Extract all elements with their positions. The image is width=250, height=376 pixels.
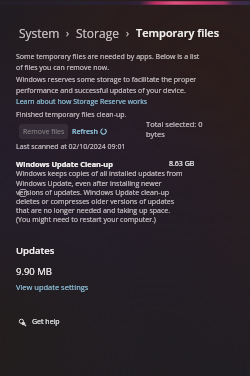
button[interactable]: Learn about how Storage Reserve works [16, 97, 148, 107]
button[interactable]: Select Windows Update Clean-up [19, 189, 27, 197]
staticText: Remove files [23, 127, 65, 137]
staticText: Windows Update Clean-up [16, 159, 113, 169]
staticText: Last scanned at 02/10/2024 09:01 [16, 142, 126, 152]
button[interactable]: System [19, 25, 60, 41]
staticText: Windows reserves some storage to facilit… [16, 75, 202, 95]
staticText: Refresh [72, 127, 98, 137]
staticText: Get help [32, 317, 60, 327]
button[interactable]: View update settings [16, 282, 89, 292]
staticText: › [126, 26, 130, 40]
button[interactable]: Storage [76, 25, 119, 41]
staticText: Total selected: 0 bytes [146, 119, 206, 139]
staticText: Some temporary files are needed by apps.… [16, 52, 202, 72]
staticText: 9.90 MB [16, 265, 52, 278]
button[interactable]: Get help [19, 317, 60, 327]
staticText: Windows keeps copies of all installed up… [16, 169, 186, 224]
other: Get help [19, 319, 26, 326]
staticText: 8.63 GB [169, 159, 195, 169]
staticText: Temporary files [136, 25, 220, 40]
button[interactable]: Remove files [19, 124, 68, 139]
staticText: Updates [16, 244, 55, 257]
staticText: Finished temporary files clean-up. [16, 110, 127, 120]
staticText: › [66, 26, 70, 40]
button[interactable]: Refresh [72, 124, 107, 139]
